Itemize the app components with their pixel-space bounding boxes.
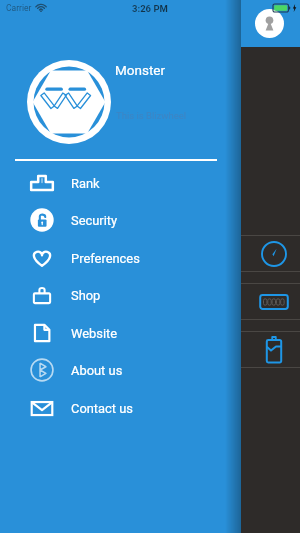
staticText: Carrier: [6, 3, 32, 13]
staticText: This is Blizwheel: [116, 110, 187, 121]
button[interactable]: Odometer: [0, 283, 300, 320]
staticText: Contact us: [71, 401, 134, 416]
button[interactable]: Shop: [0, 276, 241, 314]
button[interactable]: Website: [0, 314, 241, 352]
button[interactable]: Preferences: [0, 239, 241, 277]
button[interactable]: Speed: [0, 235, 300, 272]
staticText: Shop: [71, 288, 101, 303]
staticText: Security: [71, 213, 118, 228]
button[interactable]: Profile: [255, 9, 284, 38]
staticText: 3:26 PM: [132, 3, 168, 14]
staticText: About us: [71, 363, 123, 378]
staticText: Preferences: [71, 251, 140, 266]
button[interactable]: Rank: [0, 164, 241, 202]
button[interactable]: Contact us: [0, 389, 241, 427]
staticText: Rank: [71, 176, 100, 191]
button[interactable]: About us: [0, 351, 241, 389]
button[interactable]: Security: [0, 201, 241, 239]
staticText: Monster: [115, 62, 166, 78]
button[interactable]: Fuel: [0, 331, 300, 368]
staticText: Website: [71, 326, 118, 341]
